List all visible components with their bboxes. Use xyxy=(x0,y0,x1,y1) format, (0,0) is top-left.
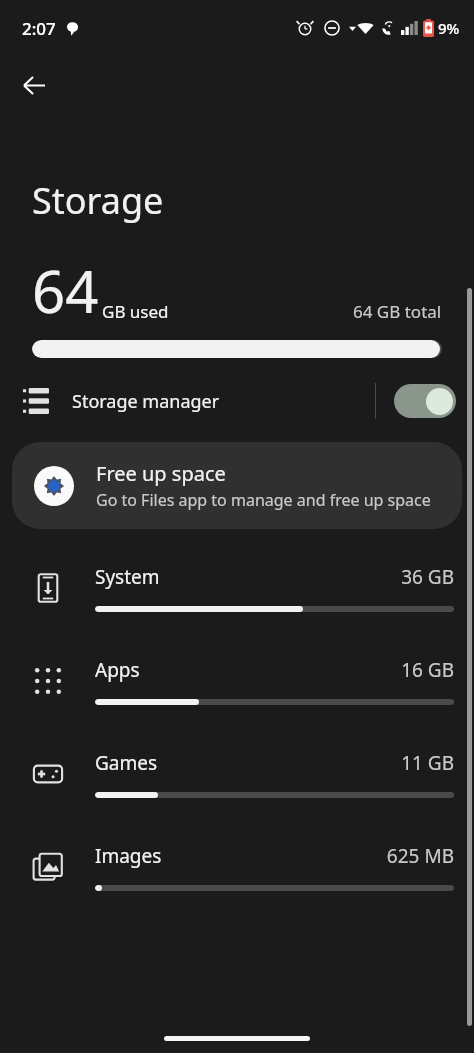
button[interactable]: System xyxy=(0,541,474,634)
staticText: System xyxy=(95,564,160,590)
staticText: 625 MB xyxy=(386,843,454,869)
staticText: 16 GB xyxy=(401,657,454,683)
staticText: GB used xyxy=(102,300,169,323)
staticText: Free up space xyxy=(96,460,226,487)
staticText: 2:07 xyxy=(22,17,56,40)
button[interactable]: Back xyxy=(10,61,58,109)
staticText: Storage xyxy=(32,176,164,225)
staticText: Go to Files app to manage and free up sp… xyxy=(96,489,431,511)
staticText: 36 GB xyxy=(401,564,454,590)
staticText: 9% xyxy=(438,18,460,38)
staticText: Storage manager xyxy=(72,389,220,414)
button[interactable]: Games xyxy=(0,727,474,820)
button[interactable]: Storage manager toggle xyxy=(394,384,456,418)
button[interactable]: Free up space xyxy=(12,442,462,529)
button[interactable]: Storage manager xyxy=(0,370,474,432)
staticText: 11 GB xyxy=(401,750,454,776)
staticText: 64 GB total xyxy=(353,300,442,323)
staticText: Images xyxy=(95,843,162,869)
staticText: Apps xyxy=(95,657,140,683)
staticText: 64 xyxy=(32,251,99,330)
button[interactable]: Images xyxy=(0,820,474,913)
staticText: Games xyxy=(95,750,158,776)
button[interactable]: Apps xyxy=(0,634,474,727)
